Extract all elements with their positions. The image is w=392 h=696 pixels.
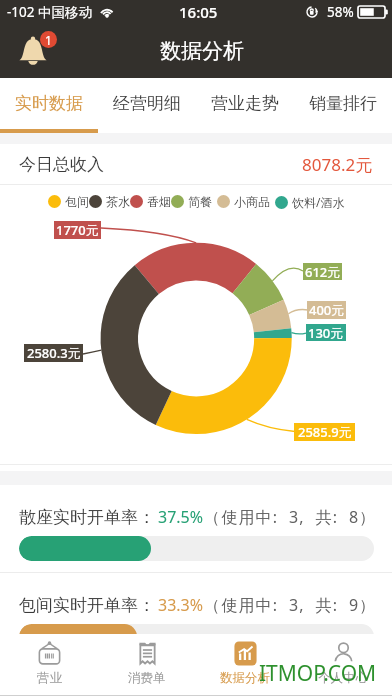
staticText: 400元 (309, 301, 345, 319)
button[interactable]: 营业 (0, 634, 98, 696)
staticText: 130元 (308, 324, 344, 341)
staticText: 营业 (37, 670, 62, 686)
staticText: 茶水 (106, 194, 130, 209)
staticText: 香烟 (147, 194, 171, 209)
staticText: -102 中国移动 (7, 3, 93, 21)
button[interactable]: 消费单 (98, 634, 196, 696)
button[interactable]: 营业走势 (196, 78, 294, 129)
staticText: 1 (45, 32, 52, 48)
button[interactable]: 个人中心 (294, 634, 392, 696)
staticText: 简餐 (188, 194, 212, 209)
staticText: 8078.2元 (302, 153, 373, 176)
staticText: 包间实时开单率： (19, 595, 155, 616)
button[interactable]: 经营明细 (98, 78, 196, 129)
button[interactable]: 数据分析 (196, 634, 294, 696)
staticText: 小商品 (234, 194, 270, 209)
staticText: 16:05 (179, 2, 218, 22)
staticText: ITMOP.COM (259, 659, 377, 688)
staticText: 实时数据 (15, 93, 83, 114)
staticText: 营业走势 (211, 93, 279, 114)
staticText: 33.3% (158, 594, 204, 616)
staticText: 饮料/酒水 (292, 194, 345, 210)
staticText: 消费单 (128, 670, 166, 686)
staticText: 2585.9元 (298, 423, 352, 441)
staticText: 数据分析 (220, 670, 270, 686)
staticText: 销量排行 (309, 93, 377, 114)
staticText: 612元 (305, 263, 341, 280)
staticText: 1770元 (56, 221, 99, 239)
staticText: （使用中: 3, 共: 8） (204, 506, 374, 528)
staticText: 数据分析 (160, 38, 244, 64)
staticText: 今日总收入 (19, 154, 104, 175)
staticText: 37.5% (158, 506, 204, 528)
staticText: （使用中: 3, 共: 9） (204, 594, 374, 616)
button[interactable]: 销量排行 (294, 78, 392, 129)
staticText: 经营明细 (113, 93, 181, 114)
staticText: 包间 (65, 194, 89, 209)
staticText: 2580.3元 (27, 344, 81, 362)
button[interactable]: Notifications (16, 32, 50, 70)
staticText: 58% (327, 3, 354, 21)
button[interactable]: 实时数据 (0, 78, 98, 129)
staticText: 散座实时开单率： (19, 507, 155, 528)
staticText: 个人中心 (318, 670, 368, 686)
